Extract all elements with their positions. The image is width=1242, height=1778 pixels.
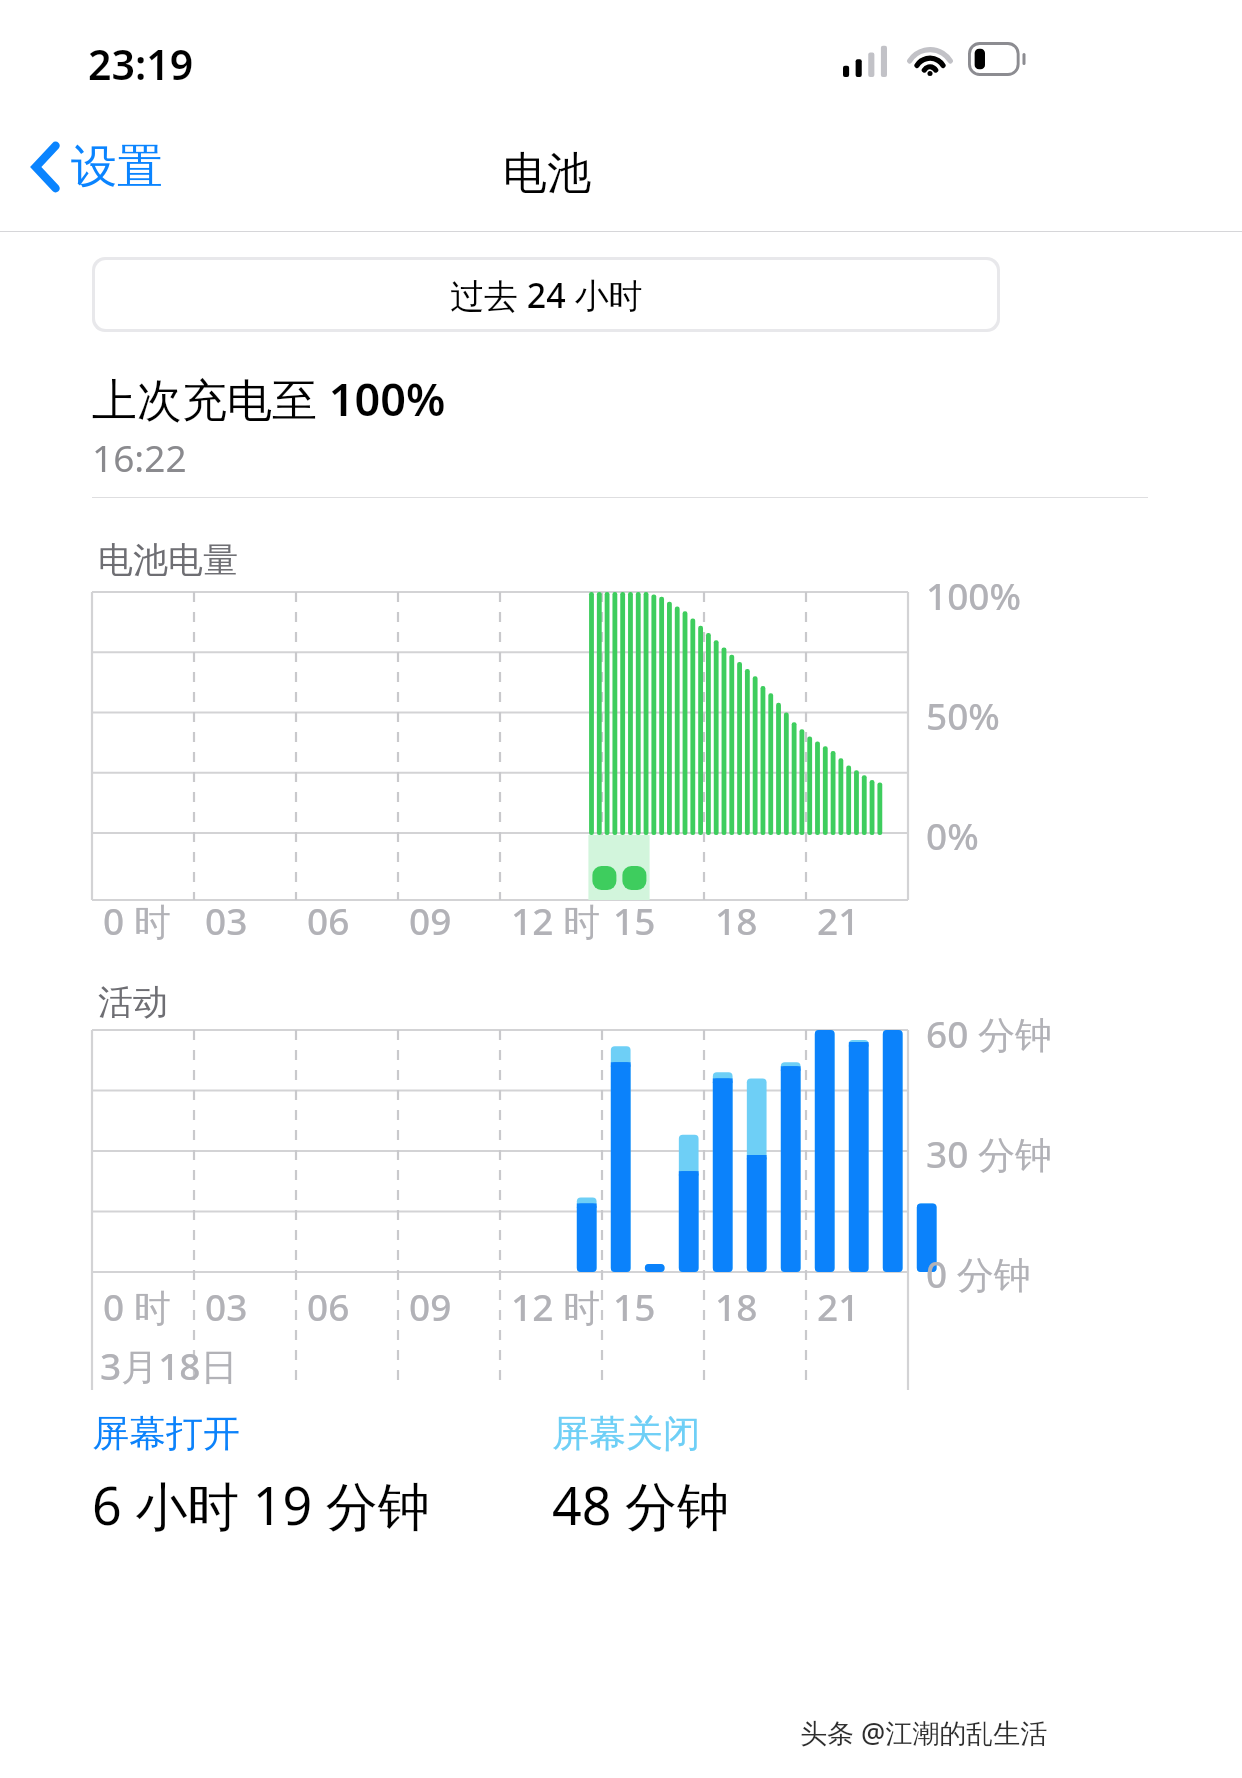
staticText: 23:19 (88, 36, 194, 92)
staticText: 上次充电至 100% (92, 368, 446, 429)
staticText: 电池电量 (98, 538, 238, 582)
staticText: 50% (926, 690, 1000, 740)
staticText: 16:22 (92, 432, 187, 482)
staticText: 过去 24 小时 (450, 272, 643, 318)
staticText: 18 (715, 895, 758, 945)
staticText: 09 (409, 895, 452, 945)
other: Battery (968, 42, 1028, 76)
staticText: 12 时 (511, 895, 600, 946)
staticText: 12 时 (511, 1281, 600, 1332)
staticText: 18 (715, 1281, 758, 1331)
staticText: 03 (205, 895, 248, 945)
staticText: 0 分钟 (926, 1248, 1031, 1299)
staticText: 60 分钟 (926, 1008, 1052, 1059)
staticText: 屏幕打开 (92, 1410, 240, 1457)
staticText: 3月18日 (100, 1340, 238, 1391)
staticText: 03 (205, 1281, 248, 1331)
other: Wi-Fi (909, 43, 951, 77)
staticText: 屏幕关闭 (552, 1410, 700, 1457)
staticText: 设置 (71, 138, 163, 196)
staticText: 06 (307, 1281, 350, 1331)
staticText: 0% (926, 810, 979, 860)
staticText: 15 (613, 895, 656, 945)
other: Cellular signal (843, 46, 887, 77)
staticText: 06 (307, 895, 350, 945)
staticText: 电池 (503, 146, 591, 201)
staticText: 15 (613, 1281, 656, 1331)
staticText: 活动 (98, 980, 168, 1024)
button[interactable]: 设置 (18, 124, 175, 210)
staticText: 0 时 (103, 895, 171, 946)
staticText: 21 (817, 1281, 860, 1331)
staticText: 30 分钟 (926, 1128, 1052, 1179)
staticText: 头条 @江潮的乱生活 (800, 1714, 1048, 1751)
staticText: 100% (926, 570, 1022, 620)
staticText: 0 时 (103, 1281, 171, 1332)
button[interactable]: 过去 24 小时 (95, 260, 997, 329)
staticText: 6 小时 19 分钟 (92, 1469, 430, 1540)
staticText: 09 (409, 1281, 452, 1331)
staticText: 48 分钟 (552, 1469, 730, 1540)
staticText: 21 (817, 895, 860, 945)
